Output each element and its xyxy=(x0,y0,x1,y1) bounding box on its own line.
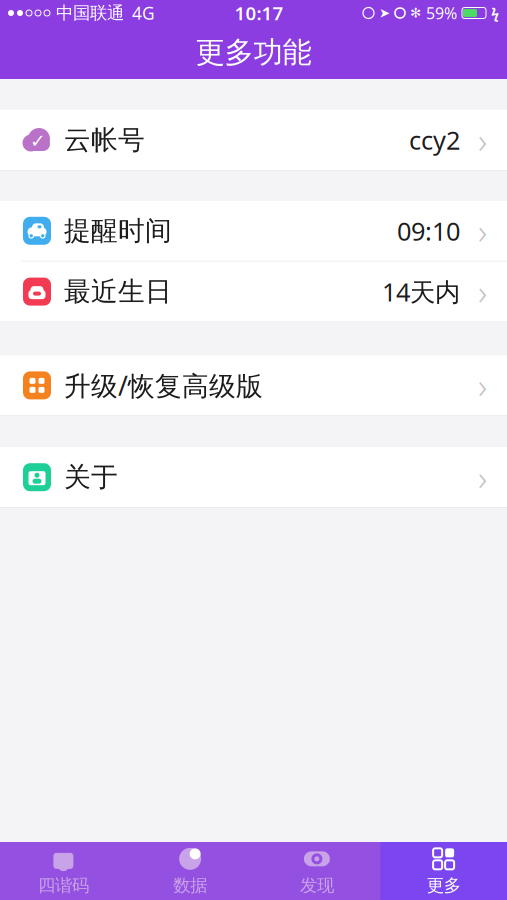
staticText: 升级/恢复高级版 xyxy=(64,368,263,403)
staticText: ➤ xyxy=(379,5,390,20)
staticText: 59% xyxy=(426,2,457,24)
staticText: 中国联通 xyxy=(56,2,124,24)
button[interactable]: 更多 xyxy=(380,842,507,900)
staticText: ϟ xyxy=(491,3,499,23)
staticText: 最近生日 xyxy=(64,275,172,308)
staticText: › xyxy=(478,454,487,500)
button[interactable]: 提醒时间 xyxy=(0,201,507,262)
button[interactable]: ✓ xyxy=(0,110,507,171)
staticText: › xyxy=(478,208,487,254)
button[interactable]: 发现 xyxy=(253,842,380,900)
button[interactable]: 升级/恢复高级版 xyxy=(0,355,507,416)
staticText: › xyxy=(478,117,487,163)
staticText: 更多功能 xyxy=(195,34,311,70)
staticText: 提醒时间 xyxy=(64,214,172,247)
staticText: ccy2 xyxy=(409,123,460,157)
staticText: 更多 xyxy=(427,875,461,896)
staticText: 发现 xyxy=(300,875,334,896)
button[interactable]: 四谐码 xyxy=(0,842,127,900)
staticText: ✓ xyxy=(30,130,46,152)
staticText: › xyxy=(478,269,487,315)
staticText: ✻ xyxy=(410,5,421,20)
staticText: 10:17 xyxy=(234,1,283,25)
staticText: 数据 xyxy=(173,875,207,896)
staticText: 4G xyxy=(132,1,155,24)
staticText: 四谐码 xyxy=(38,875,89,896)
button[interactable]: 最近生日 xyxy=(0,262,507,322)
staticText: 14天内 xyxy=(382,275,460,308)
button[interactable]: 关于 xyxy=(0,447,507,508)
staticText: 09:10 xyxy=(397,214,460,248)
staticText: 云帐号 xyxy=(64,124,145,156)
staticText: 关于 xyxy=(64,461,118,494)
button[interactable]: 数据 xyxy=(127,842,254,900)
staticText: › xyxy=(478,362,487,408)
